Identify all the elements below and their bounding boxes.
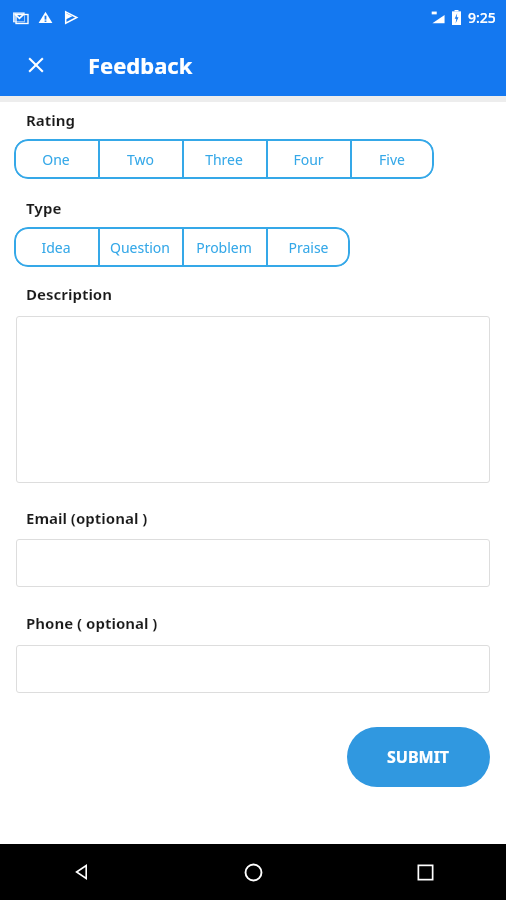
button[interactable]: Problem bbox=[182, 227, 266, 267]
staticText: 9:25 bbox=[468, 8, 496, 27]
button[interactable]: Praise bbox=[266, 227, 350, 267]
staticText: Rating bbox=[26, 110, 76, 130]
staticText: Feedback bbox=[88, 50, 193, 80]
button[interactable]: One bbox=[14, 139, 98, 179]
button[interactable]: Home bbox=[232, 851, 274, 893]
staticText: One bbox=[42, 150, 70, 169]
button[interactable]: Close bbox=[18, 47, 54, 83]
button[interactable]: Three bbox=[182, 139, 266, 179]
staticText: Idea bbox=[41, 238, 71, 257]
staticText: Two bbox=[127, 150, 154, 169]
staticText: Description bbox=[26, 284, 112, 304]
staticText: Praise bbox=[288, 238, 329, 257]
button[interactable]: Two bbox=[98, 139, 182, 179]
staticText: Four bbox=[293, 150, 324, 169]
staticText: Question bbox=[110, 238, 170, 257]
button[interactable] bbox=[16, 539, 490, 587]
button[interactable]: Five bbox=[350, 139, 434, 179]
staticText: Phone ( optional ) bbox=[26, 613, 158, 633]
button[interactable]: SUBMIT bbox=[347, 727, 490, 787]
button[interactable]: Recent apps bbox=[404, 851, 446, 893]
button[interactable]: Question bbox=[98, 227, 182, 267]
staticText: Problem bbox=[196, 238, 252, 257]
button[interactable]: Idea bbox=[14, 227, 98, 267]
button[interactable] bbox=[16, 645, 490, 693]
staticText: Type bbox=[26, 198, 62, 218]
button[interactable]: Four bbox=[266, 139, 350, 179]
button[interactable]: Back bbox=[60, 851, 102, 893]
staticText: SUBMIT bbox=[387, 746, 450, 768]
staticText: Three bbox=[205, 150, 243, 169]
staticText: Five bbox=[379, 150, 405, 169]
staticText: Email (optional ) bbox=[26, 508, 148, 528]
button[interactable] bbox=[16, 316, 490, 483]
